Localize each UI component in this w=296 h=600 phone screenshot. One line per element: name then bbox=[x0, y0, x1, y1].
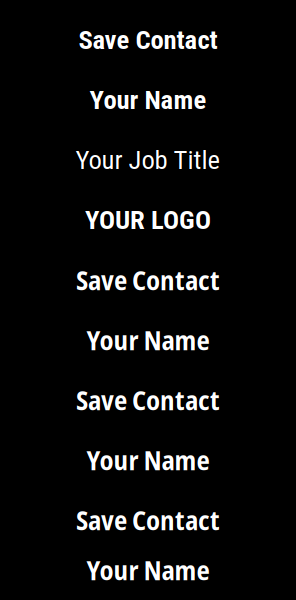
staticText: Your Name bbox=[86, 442, 209, 478]
staticText: Save Contact bbox=[76, 382, 220, 418]
staticText: Your Name bbox=[86, 552, 209, 588]
staticText: Your Job Title bbox=[75, 144, 220, 176]
staticText: YOUR LOGO bbox=[85, 204, 211, 236]
staticText: Save Contact bbox=[76, 262, 220, 298]
staticText: Save Contact bbox=[76, 502, 220, 538]
staticText: Your Name bbox=[86, 322, 209, 358]
staticText: Save Contact bbox=[78, 24, 217, 56]
staticText: Your Name bbox=[89, 84, 206, 116]
